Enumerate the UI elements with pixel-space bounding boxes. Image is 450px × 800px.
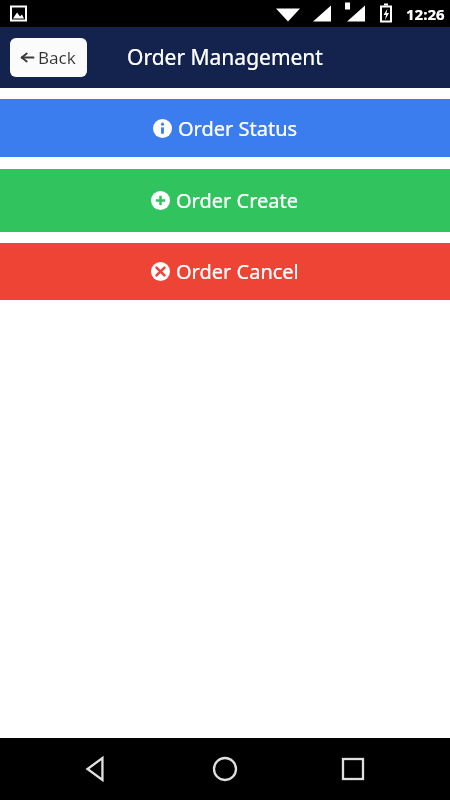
staticText: Order Status [178, 115, 298, 142]
staticText: Order Create [176, 187, 299, 214]
button[interactable]: Order Create [0, 169, 450, 232]
button[interactable]: Recent apps [336, 752, 370, 786]
button[interactable]: Back [10, 38, 87, 77]
staticText: Order Management [127, 43, 323, 72]
button[interactable]: Order Status [0, 99, 450, 157]
staticText: Back [38, 46, 76, 69]
button[interactable]: Order Cancel [0, 243, 450, 300]
staticText: 12:26 [406, 4, 445, 24]
button[interactable]: Home [208, 752, 242, 786]
button[interactable]: Back [80, 752, 114, 786]
staticText: Order Cancel [176, 258, 299, 285]
